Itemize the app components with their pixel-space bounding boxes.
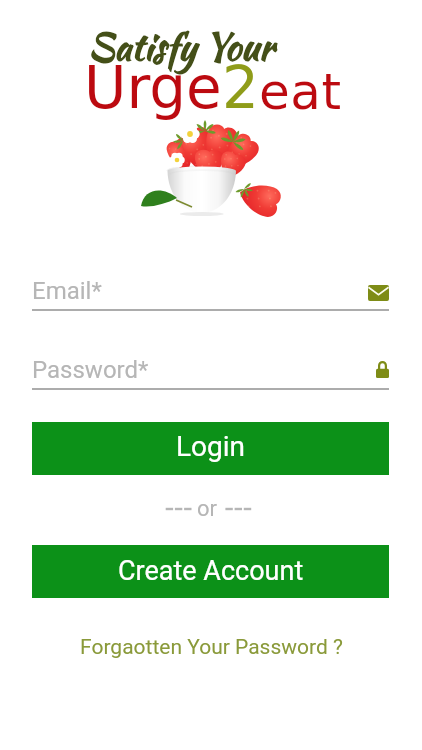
staticText: Password* [32, 356, 149, 384]
staticText: Email* [32, 277, 102, 305]
button[interactable]: Email* [32, 270, 389, 311]
staticText: Login [176, 430, 246, 463]
button[interactable]: Forgaotten Your Password ? [0, 631, 422, 663]
staticText: 2 [222, 54, 259, 122]
button[interactable]: Password* [32, 349, 389, 390]
staticText: Create Account [118, 555, 304, 587]
staticText: or [197, 496, 218, 522]
staticText: Forgaotten Your Password ? [80, 635, 343, 660]
staticText: eat [259, 63, 342, 121]
staticText: Satisfy Your [88, 20, 275, 74]
button[interactable]: Create Account [32, 545, 389, 598]
other: Email [368, 285, 389, 301]
staticText: Urge [84, 54, 222, 122]
button[interactable]: Login [32, 422, 389, 475]
other: Password [376, 361, 389, 378]
